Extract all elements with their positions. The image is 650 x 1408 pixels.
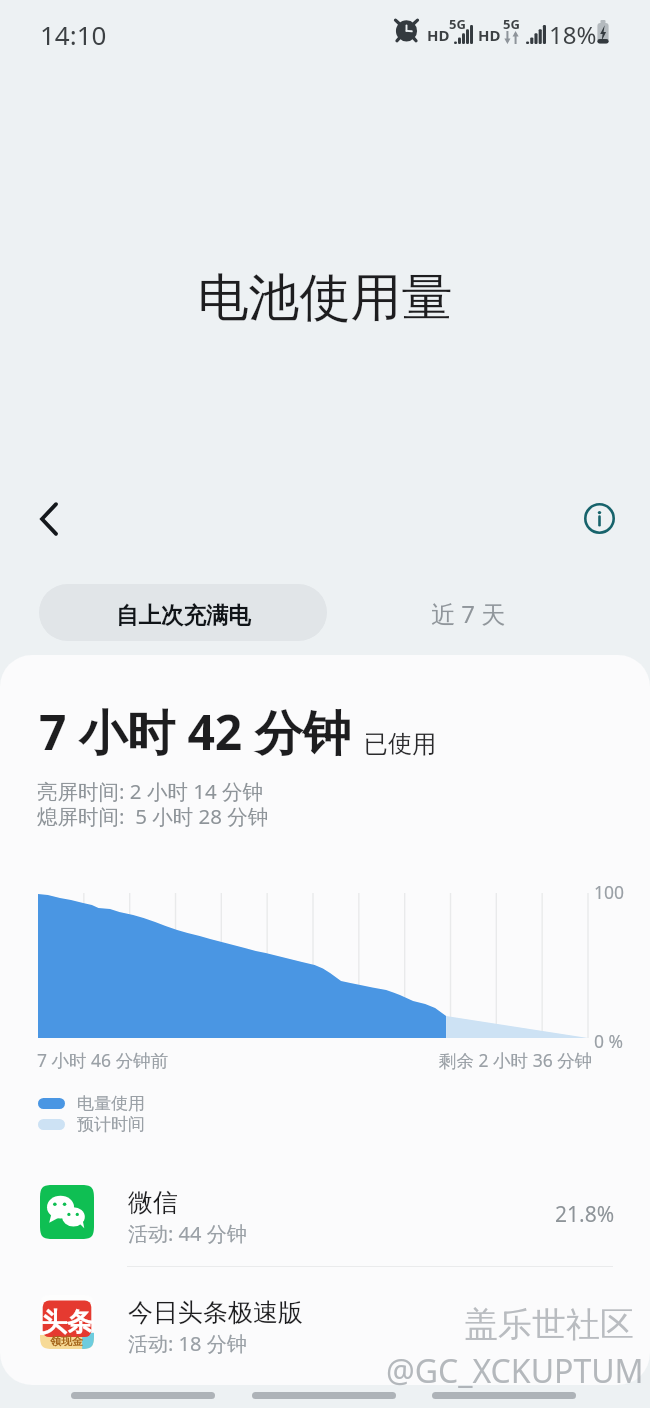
staticText: 活动: 18 分钟 [128, 1330, 247, 1357]
staticText: HD [478, 25, 501, 45]
button[interactable]: 近 7 天 [375, 584, 561, 641]
button[interactable]: Home [252, 1392, 396, 1399]
staticText: 5G [449, 15, 466, 33]
staticText: 今日头条极速版 [128, 1297, 303, 1328]
staticText: 5G [503, 15, 520, 33]
staticText: 活动: 44 分钟 [128, 1220, 247, 1247]
button[interactable]: 头条 [0, 1275, 650, 1368]
staticText: 微信 [128, 1187, 178, 1218]
staticText: 预计时间 [77, 1114, 145, 1135]
staticText: 0 % [594, 1029, 624, 1053]
staticText: @GC_XCKUPTUM [386, 1349, 644, 1393]
staticText: 100 [594, 880, 625, 904]
button[interactable]: 微信 [0, 1165, 650, 1258]
staticText: 已使用 [364, 729, 436, 759]
button[interactable]: Information [573, 492, 625, 544]
button[interactable]: Back [432, 1392, 576, 1399]
staticText: HD [427, 25, 450, 45]
staticText: 近 7 天 [431, 597, 506, 630]
button[interactable]: 自上次充满电 [39, 584, 327, 641]
button[interactable]: Recent apps [71, 1392, 215, 1399]
staticText: 领现金 [50, 1334, 83, 1348]
button[interactable]: Back [16, 493, 68, 545]
staticText: 14:10 [40, 17, 107, 52]
staticText: 头条 [41, 1306, 93, 1339]
staticText: 盖乐世社区 [464, 1303, 634, 1346]
staticText: 自上次充满电 [116, 601, 251, 629]
staticText: 熄屏时间: 5 小时 28 分钟 [37, 802, 269, 830]
staticText: 7 小时 42 分钟 [39, 699, 351, 765]
staticText: 亮屏时间: 2 小时 14 分钟 [37, 777, 263, 805]
staticText: 21.8% [555, 1200, 615, 1229]
staticText: 电量使用 [77, 1093, 145, 1114]
staticText: 剩余 2 小时 36 分钟 [439, 1048, 593, 1072]
staticText: 18% [549, 18, 597, 51]
staticText: 电池使用量 [0, 266, 650, 330]
staticText: 7 小时 46 分钟前 [37, 1048, 169, 1072]
